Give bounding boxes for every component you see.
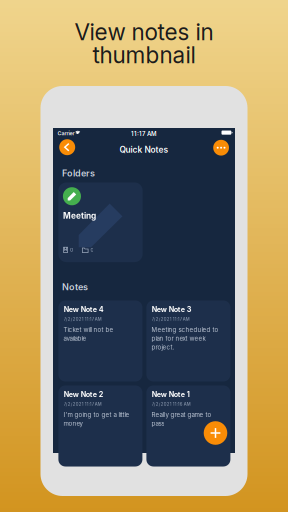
staticText: 7/2/2021 11:16 AM — [152, 402, 191, 407]
staticText: Meeting — [63, 211, 96, 221]
staticText: New Note 2 — [64, 390, 104, 399]
staticText: Folders — [62, 168, 95, 179]
button[interactable]: New Note 3 — [146, 300, 230, 381]
staticText: Notes — [62, 281, 88, 292]
staticText: New Note 4 — [64, 305, 104, 314]
staticText: 11:17 AM — [131, 130, 157, 138]
staticText: 7/2/2021 11:17 AM — [152, 317, 190, 322]
button[interactable]: Meeting — [58, 182, 143, 262]
staticText: 0 — [70, 247, 73, 253]
button[interactable]: New Note 2 — [58, 385, 142, 466]
staticText: New Note 1 — [152, 390, 190, 399]
staticText: I'm going to get a little money — [63, 411, 129, 427]
button[interactable]: Back — [59, 139, 75, 155]
staticText: thumbnail — [92, 41, 195, 69]
staticText: View notes in — [74, 18, 213, 46]
staticText: Carrier — [57, 130, 74, 137]
button[interactable]: New note — [204, 421, 227, 445]
staticText: Ticket will not be available — [63, 326, 113, 342]
staticText: 7/2/2021 11:17 AM — [64, 317, 102, 322]
staticText: 0 — [90, 247, 93, 253]
button[interactable]: More options — [213, 140, 229, 156]
button[interactable]: New Note 4 — [58, 300, 142, 381]
staticText: New Note 3 — [152, 305, 192, 314]
staticText: 7/2/2021 11:17 AM — [64, 402, 102, 407]
staticText: Quick Notes — [119, 145, 168, 155]
staticText: Meeting scheduled to plan for next week … — [151, 326, 218, 351]
button[interactable]: New Note 1 — [146, 385, 230, 466]
staticText: Really great game to pass — [151, 411, 211, 427]
